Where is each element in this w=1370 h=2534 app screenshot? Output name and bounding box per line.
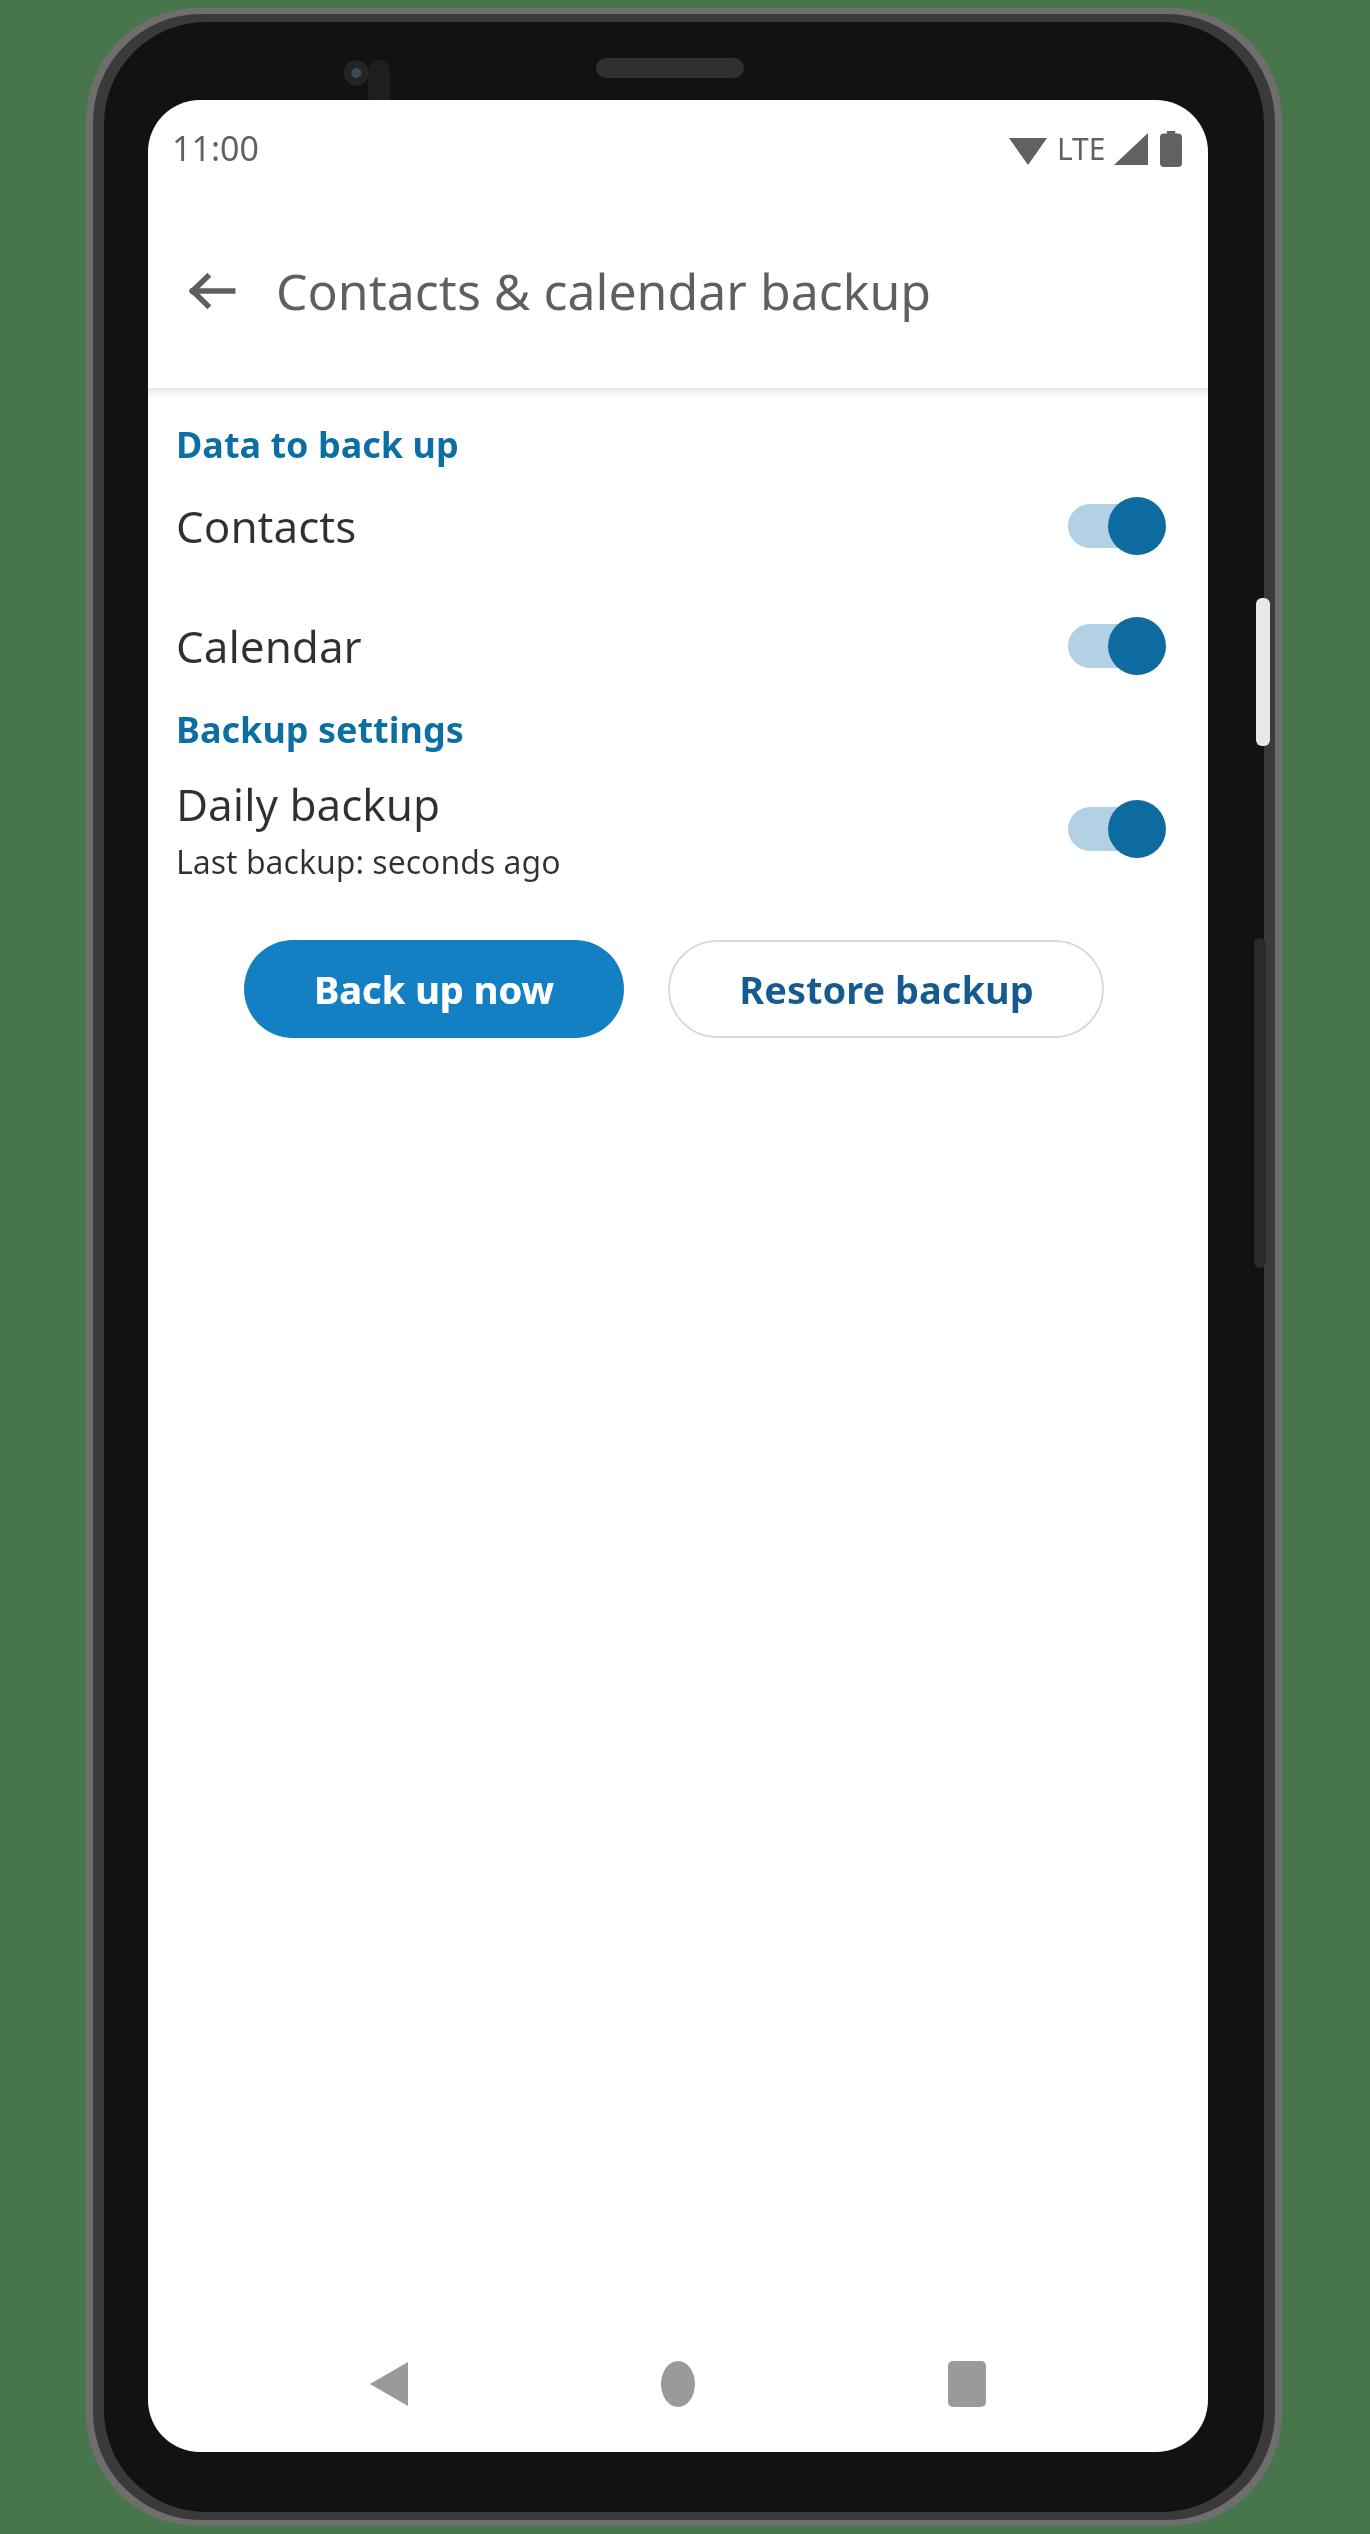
button[interactable]: Restore backup — [668, 940, 1104, 1038]
button[interactable]: Toggle — [1062, 798, 1168, 860]
button[interactable]: Daily backup — [148, 764, 1208, 894]
staticText: Daily backup — [176, 774, 440, 834]
staticText: Last backup: seconds ago — [176, 840, 561, 884]
button[interactable]: Recent apps — [919, 2348, 1015, 2420]
button[interactable]: Back up now — [244, 940, 624, 1038]
staticText: Data to back up — [176, 420, 459, 469]
staticText: Contacts & calendar backup — [276, 257, 932, 325]
staticText: Contacts — [176, 496, 357, 556]
button[interactable]: Toggle — [1062, 615, 1168, 677]
staticText: Calendar — [176, 616, 362, 676]
staticText: Restore backup — [739, 963, 1034, 1015]
button[interactable]: Home — [630, 2348, 726, 2420]
button[interactable]: Contacts — [148, 485, 1208, 567]
button[interactable]: Toggle — [1062, 495, 1168, 557]
button[interactable]: Calendar — [148, 605, 1208, 687]
button[interactable]: Back — [341, 2348, 437, 2420]
button[interactable]: Back — [166, 245, 258, 337]
staticText: Backup settings — [176, 705, 464, 754]
staticText: 11:00 — [172, 125, 259, 171]
staticText: Back up now — [314, 963, 554, 1015]
staticText: LTE — [1057, 128, 1106, 169]
